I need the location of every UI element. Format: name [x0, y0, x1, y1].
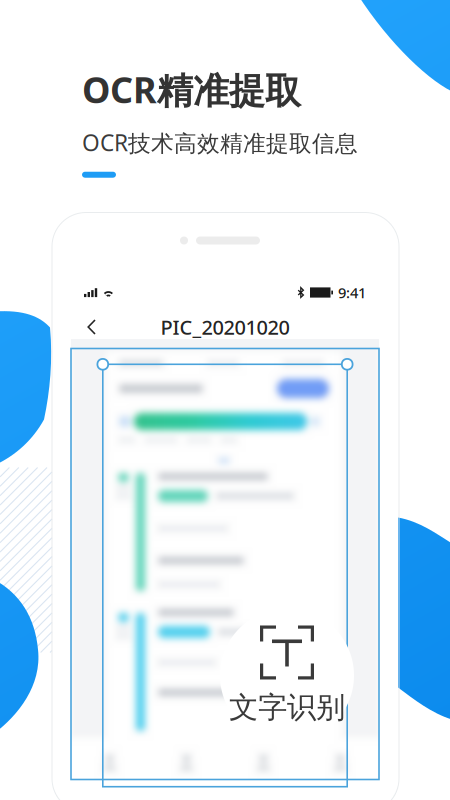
button[interactable]: Back — [71, 305, 119, 348]
button[interactable]: Tab — [302, 745, 379, 779]
button[interactable]: Tab — [225, 745, 302, 779]
button[interactable]: Tab — [148, 745, 225, 779]
button[interactable]: 文字识别 — [220, 608, 354, 742]
button[interactable]: Tab — [71, 745, 148, 779]
staticText: PIC_20201020 — [160, 314, 289, 340]
staticText: OCR精准提取 — [82, 65, 301, 113]
staticText: OCR技术高效精准提取信息 — [82, 127, 358, 158]
staticText: 9:41 — [338, 283, 366, 302]
staticText: 文字识别 — [229, 689, 345, 725]
